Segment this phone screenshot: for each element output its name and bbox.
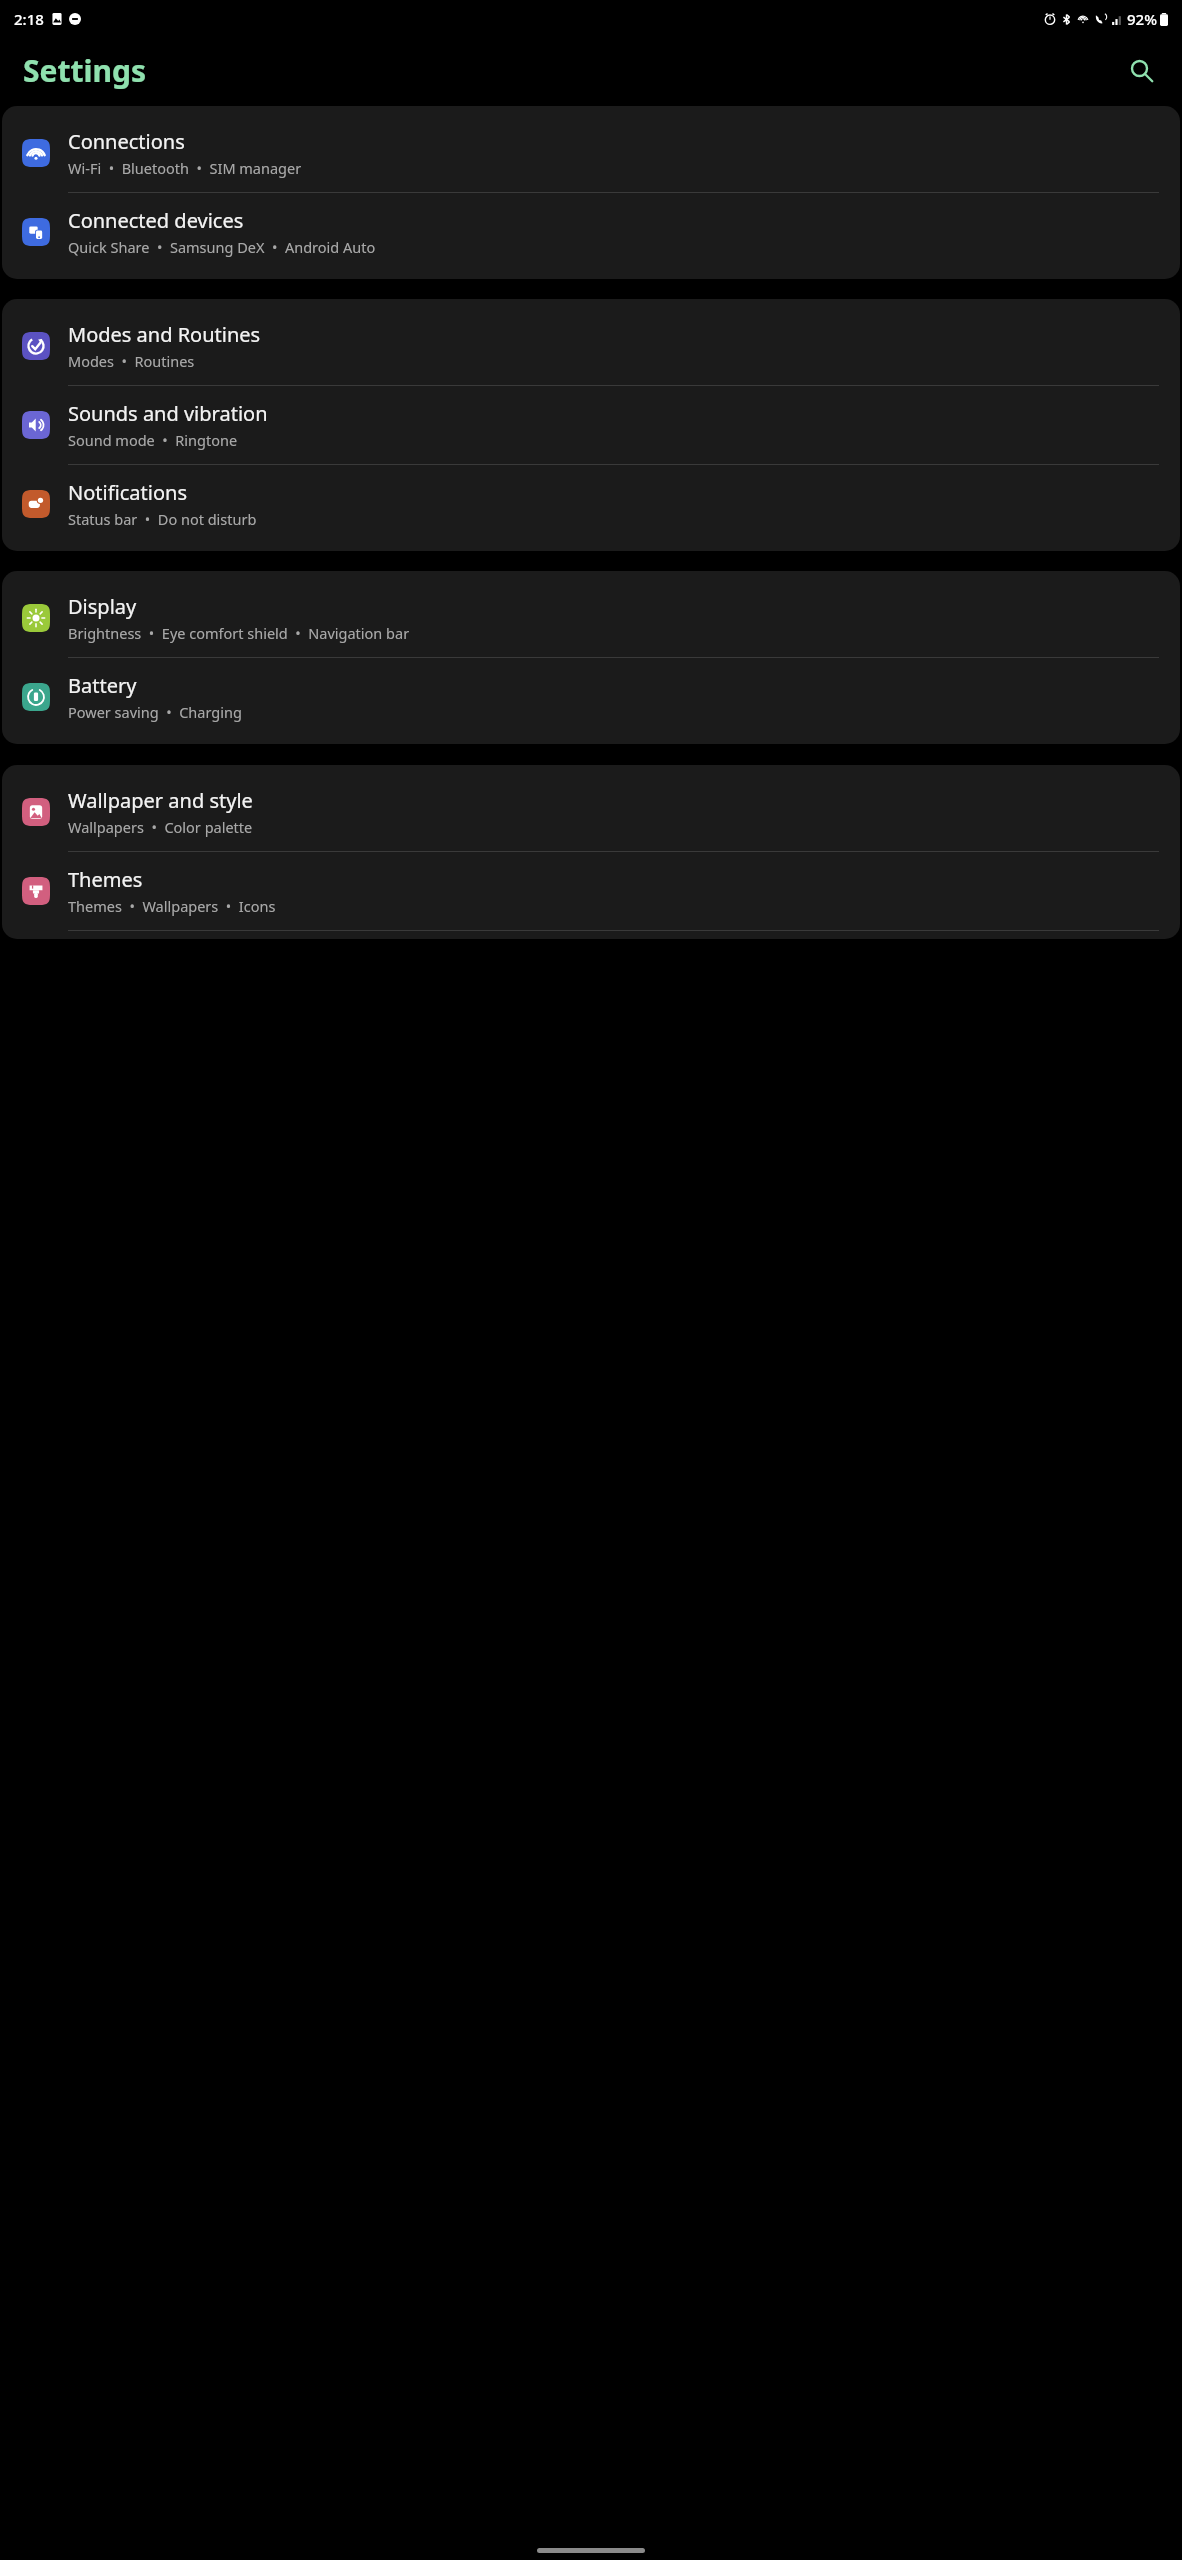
staticText: Modes and Routines <box>68 321 261 348</box>
button[interactable]: Connected devices <box>2 193 1180 271</box>
button[interactable]: Connections <box>2 114 1180 193</box>
button[interactable]: Themes <box>2 852 1180 931</box>
staticText: Themes • Wallpapers • Icons <box>68 896 276 916</box>
staticText: Themes <box>68 866 143 893</box>
staticText: Quick Share • Samsung DeX • Android Auto <box>68 237 376 257</box>
staticText: Connected devices <box>68 207 244 234</box>
button[interactable]: Modes and Routines <box>2 307 1180 386</box>
staticText: Battery <box>68 672 137 699</box>
staticText: Connections <box>68 128 185 155</box>
staticText: Display <box>68 593 137 620</box>
button[interactable]: Notifications <box>2 465 1180 543</box>
button[interactable]: Wallpaper and style <box>2 773 1180 852</box>
staticText: 2:18 <box>14 9 44 29</box>
staticText: Power saving • Charging <box>68 702 242 722</box>
staticText: Wallpaper and style <box>68 787 253 814</box>
staticText: 92% <box>1127 9 1157 29</box>
staticText: Sound mode • Ringtone <box>68 430 238 450</box>
staticText: Sounds and vibration <box>68 400 268 427</box>
staticText: Brightness • Eye comfort shield • Naviga… <box>68 623 410 643</box>
button[interactable]: Search <box>1118 47 1164 93</box>
button[interactable]: Sounds and vibration <box>2 386 1180 465</box>
button[interactable]: Battery <box>2 658 1180 736</box>
staticText: Modes • Routines <box>68 351 195 371</box>
button[interactable]: Display <box>2 579 1180 658</box>
staticText: Notifications <box>68 479 187 506</box>
staticText: Wi-Fi • Bluetooth • SIM manager <box>68 158 302 178</box>
staticText: Wallpapers • Color palette <box>68 817 253 837</box>
staticText: Settings <box>23 50 146 91</box>
staticText: Status bar • Do not disturb <box>68 509 257 529</box>
